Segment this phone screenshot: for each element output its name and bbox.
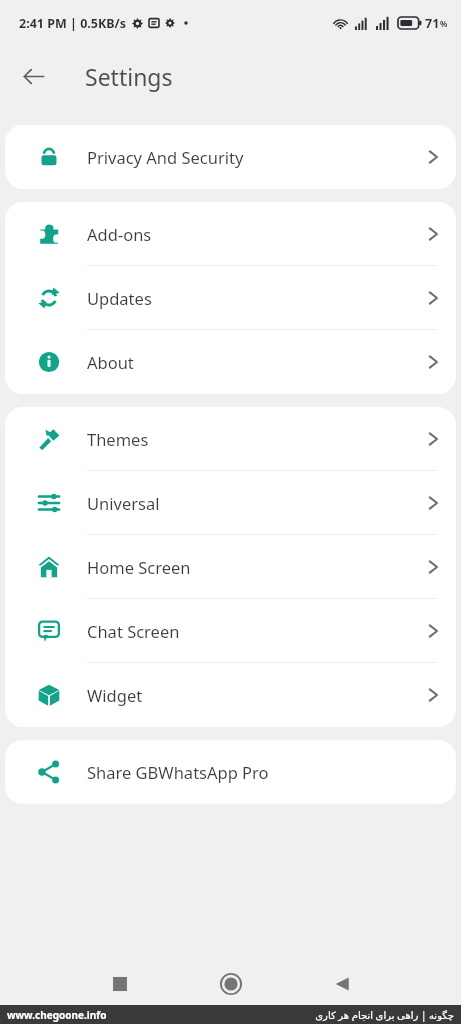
- staticText: Themes: [87, 428, 149, 450]
- button[interactable]: Back: [325, 967, 359, 1001]
- staticText: Home Screen: [87, 556, 191, 578]
- button[interactable]: Back: [13, 56, 53, 96]
- staticText: Universal: [87, 492, 160, 514]
- button[interactable]: About: [5, 330, 456, 394]
- button[interactable]: Universal: [5, 471, 456, 535]
- button[interactable]: Recent apps: [103, 967, 137, 1001]
- staticText: چگونه | راهی برای انجام هر کاری: [315, 1008, 454, 1022]
- staticText: About: [87, 351, 134, 373]
- button[interactable]: Share GBWhatsApp Pro: [5, 740, 456, 804]
- staticText: Share GBWhatsApp Pro: [87, 761, 269, 783]
- button[interactable]: Updates: [5, 266, 456, 330]
- staticText: Add-ons: [87, 223, 152, 245]
- button[interactable]: Privacy And Security: [5, 125, 456, 189]
- button[interactable]: Add-ons: [5, 202, 456, 266]
- button[interactable]: Home: [214, 967, 248, 1001]
- staticText: 2:41 PM | 0.5KB/s: [19, 15, 127, 32]
- staticText: Widget: [87, 684, 143, 706]
- staticText: Chat Screen: [87, 620, 180, 642]
- staticText: Updates: [87, 287, 152, 309]
- staticText: 71: [425, 15, 440, 32]
- button[interactable]: Home Screen: [5, 535, 456, 599]
- button[interactable]: Themes: [5, 407, 456, 471]
- staticText: www.chegoone.info: [7, 1008, 107, 1022]
- button[interactable]: Chat Screen: [5, 599, 456, 663]
- staticText: %: [440, 18, 448, 29]
- button[interactable]: Widget: [5, 663, 456, 727]
- staticText: Settings: [85, 61, 173, 92]
- staticText: Privacy And Security: [87, 146, 244, 168]
